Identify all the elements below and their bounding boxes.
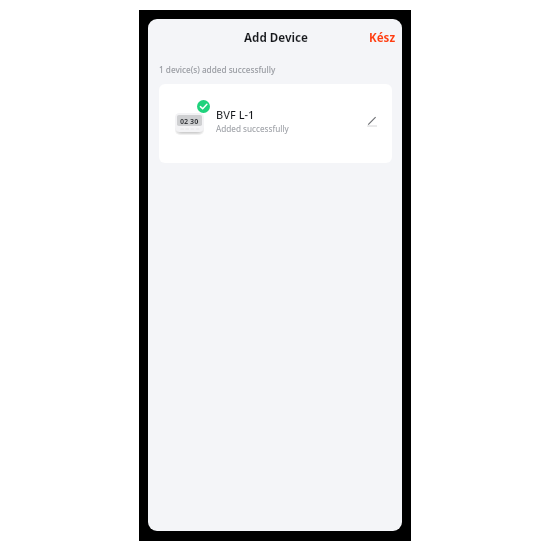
button[interactable]: Rename device — [358, 107, 386, 135]
staticText: BVF L-1 — [216, 107, 255, 122]
button[interactable]: 02 30 — [159, 84, 392, 163]
staticText: Added successfully — [216, 123, 289, 134]
button[interactable]: Kész — [362, 23, 402, 53]
staticText: 02 30 — [180, 116, 199, 126]
staticText: Kész — [369, 30, 396, 46]
staticText: 1 device(s) added successfully — [159, 64, 276, 75]
staticText: Add Device — [149, 30, 402, 46]
